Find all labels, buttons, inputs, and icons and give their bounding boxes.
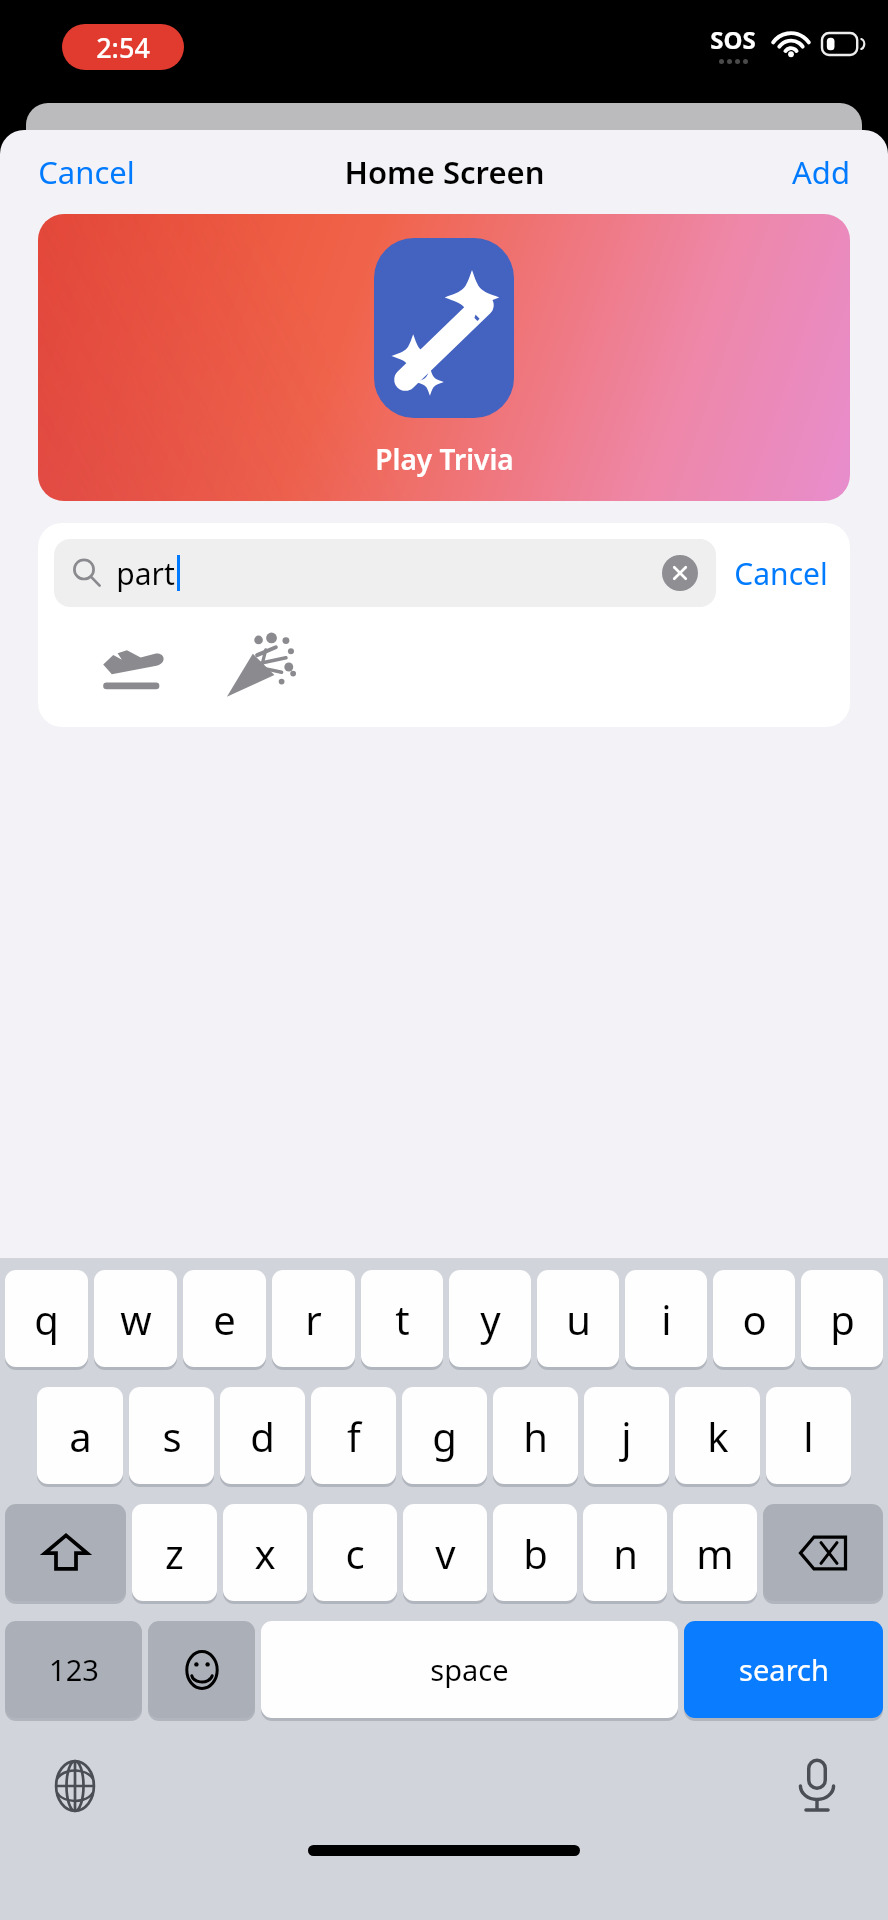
button[interactable]: Clear text	[662, 555, 698, 591]
button[interactable]: q	[5, 1270, 88, 1367]
staticText: r	[305, 1292, 322, 1346]
button[interactable]: k	[675, 1387, 760, 1484]
staticText: v	[435, 1526, 456, 1580]
staticText: x	[254, 1526, 276, 1580]
button[interactable]: Cancel	[20, 139, 153, 205]
button[interactable]: n	[583, 1504, 667, 1601]
button[interactable]: c	[313, 1504, 397, 1601]
staticText: a	[69, 1409, 92, 1463]
button[interactable]: part	[54, 539, 716, 607]
staticText: 123	[49, 1650, 99, 1689]
button[interactable]: Emoji keyboard	[148, 1621, 255, 1718]
button[interactable]: a	[37, 1387, 123, 1484]
staticText: space	[430, 1650, 509, 1689]
staticText: w	[120, 1292, 152, 1346]
staticText: z	[165, 1526, 184, 1580]
staticText: s	[162, 1409, 182, 1463]
staticText: i	[661, 1292, 672, 1346]
button[interactable]: Play Trivia	[38, 214, 850, 501]
staticText: l	[803, 1409, 814, 1463]
staticText: o	[742, 1292, 767, 1346]
button[interactable]: d	[220, 1387, 305, 1484]
staticText: m	[696, 1526, 734, 1580]
staticText: y	[480, 1292, 501, 1346]
staticText: Home Screen	[344, 151, 545, 193]
button[interactable]: m	[673, 1504, 757, 1601]
staticText: Play Trivia	[375, 440, 514, 478]
staticText: j	[621, 1409, 632, 1463]
staticText: b	[523, 1526, 548, 1580]
button[interactable]: r	[272, 1270, 355, 1367]
button[interactable]: o	[713, 1270, 795, 1367]
button[interactable]: z	[132, 1504, 217, 1601]
button[interactable]: Party popper emoji	[224, 634, 296, 700]
button[interactable]: v	[403, 1504, 487, 1601]
button[interactable]: b	[493, 1504, 577, 1601]
button[interactable]: Dictate	[794, 1758, 840, 1814]
staticText: Cancel	[38, 151, 135, 193]
button[interactable]: w	[94, 1270, 177, 1367]
button[interactable]: Cancel	[716, 545, 828, 602]
button[interactable]: Airplane emoji	[96, 637, 168, 697]
staticText: Cancel	[734, 553, 828, 594]
button[interactable]: h	[493, 1387, 578, 1484]
button[interactable]: i	[625, 1270, 707, 1367]
staticText: c	[345, 1526, 365, 1580]
staticText: u	[566, 1292, 591, 1346]
staticText: 2:54	[96, 29, 150, 66]
staticText: part	[116, 553, 175, 594]
staticText: n	[613, 1526, 638, 1580]
button[interactable]: s	[129, 1387, 214, 1484]
button[interactable]: Add	[774, 139, 868, 205]
button[interactable]: l	[766, 1387, 851, 1484]
staticText: f	[347, 1409, 361, 1463]
button[interactable]: space	[261, 1621, 678, 1718]
staticText: SOS	[710, 23, 756, 56]
staticText: g	[432, 1409, 457, 1463]
staticText: p	[830, 1292, 855, 1346]
staticText: h	[523, 1409, 548, 1463]
button[interactable]: j	[584, 1387, 669, 1484]
button[interactable]: y	[449, 1270, 531, 1367]
button[interactable]: f	[311, 1387, 396, 1484]
button[interactable]: 123	[5, 1621, 142, 1718]
staticText: q	[34, 1292, 59, 1346]
button[interactable]: Backspace	[763, 1504, 883, 1601]
button[interactable]: p	[801, 1270, 883, 1367]
staticText: Add	[792, 151, 850, 193]
button[interactable]: u	[537, 1270, 619, 1367]
staticText: d	[250, 1409, 275, 1463]
button[interactable]: g	[402, 1387, 487, 1484]
button[interactable]: e	[183, 1270, 266, 1367]
button[interactable]: t	[361, 1270, 443, 1367]
staticText: k	[707, 1409, 729, 1463]
button[interactable]: x	[223, 1504, 307, 1601]
staticText: t	[395, 1292, 410, 1346]
staticText: search	[739, 1650, 829, 1689]
button[interactable]: Change keyboard	[48, 1759, 102, 1813]
staticText: e	[213, 1292, 236, 1346]
button[interactable]: Shift	[5, 1504, 126, 1601]
button[interactable]: search	[684, 1621, 883, 1718]
